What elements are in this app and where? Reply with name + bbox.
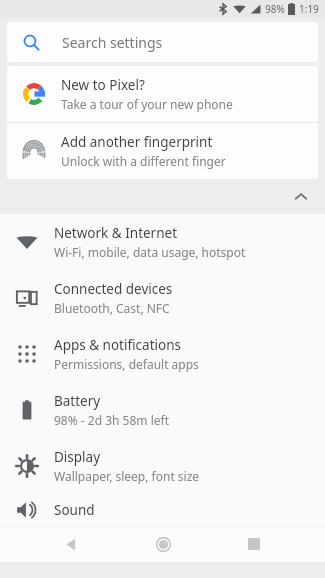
button[interactable]: Apps & notifications bbox=[0, 326, 325, 382]
staticText: Network & Internet bbox=[54, 224, 178, 242]
button[interactable]: Recent apps bbox=[234, 526, 274, 562]
staticText: 98% bbox=[265, 2, 285, 16]
staticText: 98% - 2d 3h 58m left bbox=[54, 412, 169, 428]
staticText: Unlock with a different finger bbox=[61, 153, 226, 169]
staticText: Bluetooth, Cast, NFC bbox=[54, 300, 170, 316]
staticText: Apps & notifications bbox=[54, 336, 181, 354]
button[interactable]: Add another fingerprint bbox=[7, 123, 318, 179]
button[interactable]: New to Pixel? bbox=[7, 66, 318, 122]
staticText: Display bbox=[54, 448, 101, 466]
staticText: Permissions, default apps bbox=[54, 356, 199, 372]
staticText: Search settings bbox=[62, 33, 163, 52]
button[interactable]: Back bbox=[51, 526, 91, 562]
staticText: Wi-Fi, mobile, data usage, hotspot bbox=[54, 244, 246, 260]
staticText: Sound bbox=[54, 501, 95, 519]
staticText: New to Pixel? bbox=[61, 76, 145, 94]
button[interactable]: Home bbox=[143, 526, 183, 562]
button[interactable]: Battery bbox=[0, 382, 325, 438]
button[interactable]: Network & Internet bbox=[0, 214, 325, 270]
button[interactable]: Display bbox=[0, 438, 325, 494]
staticText: Connected devices bbox=[54, 280, 173, 298]
staticText: 1:19 bbox=[299, 2, 319, 16]
button[interactable]: Search settings bbox=[7, 22, 318, 62]
staticText: Battery bbox=[54, 392, 101, 410]
staticText: Wallpaper, sleep, font size bbox=[54, 468, 200, 484]
staticText: Add another fingerprint bbox=[61, 133, 213, 151]
button[interactable]: Sound bbox=[0, 494, 325, 526]
button[interactable]: Collapse suggestions bbox=[285, 181, 317, 213]
button[interactable]: Connected devices bbox=[0, 270, 325, 326]
staticText: Take a tour of your new phone bbox=[61, 96, 233, 112]
